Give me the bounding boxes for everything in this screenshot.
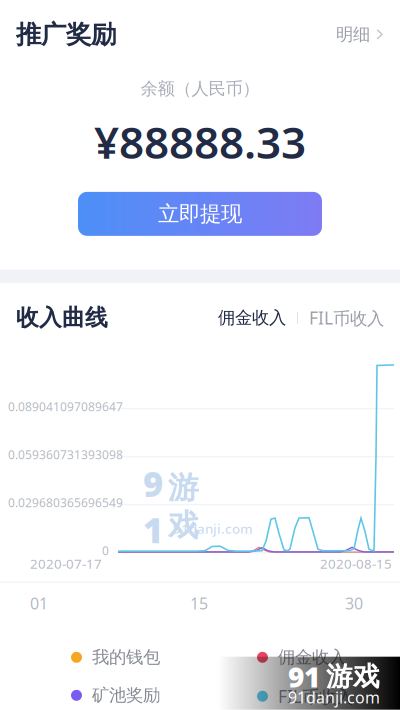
staticText: 余额（人民币）	[140, 78, 259, 99]
staticText: 91danji.com	[288, 687, 380, 708]
staticText: FIL币收入	[278, 685, 353, 708]
staticText: 0.089041097089647	[8, 399, 123, 415]
staticText: 佣金收入	[278, 647, 346, 668]
staticText: 佣金收入	[218, 307, 286, 328]
staticText: 01	[30, 593, 48, 614]
button[interactable]: 佣金收入	[218, 307, 286, 328]
staticText: 2020-07-17	[30, 555, 102, 572]
staticText: 游戏	[168, 469, 199, 544]
staticText: 矿池奖励	[92, 685, 160, 706]
button[interactable]: FIL币收入	[309, 306, 384, 329]
staticText: 30	[345, 593, 363, 614]
button[interactable]: 明细	[336, 24, 384, 45]
staticText: 立即提现	[158, 201, 242, 227]
staticText: 收入曲线	[16, 304, 108, 332]
staticText: ¥88888.33	[94, 112, 306, 171]
button[interactable]: 立即提现	[78, 192, 322, 236]
staticText: 15	[190, 593, 208, 614]
staticText: 0.029680365696549	[8, 495, 123, 511]
staticText: 我的钱包	[92, 647, 160, 668]
staticText: 91	[143, 461, 163, 553]
staticText: 91danji.com	[173, 520, 253, 537]
staticText: 2020-08-15	[320, 555, 392, 572]
staticText: FIL币收入	[309, 306, 384, 329]
staticText: 0	[102, 543, 109, 559]
staticText: 91	[288, 658, 320, 695]
staticText: 0.059360731393098	[8, 447, 123, 463]
staticText: 明细	[336, 24, 370, 45]
staticText: 推广奖励	[16, 19, 116, 50]
staticText: 游戏	[326, 660, 380, 693]
